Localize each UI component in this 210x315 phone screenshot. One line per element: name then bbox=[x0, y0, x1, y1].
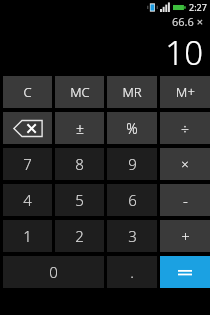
button[interactable]: 1 bbox=[3, 220, 52, 252]
button[interactable]: 3 bbox=[107, 220, 157, 252]
button[interactable]: 7 bbox=[3, 148, 52, 180]
button[interactable]: - bbox=[160, 184, 210, 216]
staticText: 9 bbox=[128, 154, 137, 174]
button[interactable]: 6 bbox=[107, 184, 157, 216]
button[interactable]: ÷ bbox=[160, 112, 210, 144]
button[interactable]: MR bbox=[107, 76, 157, 108]
staticText: C bbox=[23, 83, 32, 101]
staticText: 3 bbox=[128, 226, 137, 246]
button[interactable]: 4 bbox=[3, 184, 52, 216]
staticText: + bbox=[181, 226, 190, 246]
staticText: 2 bbox=[75, 226, 84, 246]
staticText: . bbox=[130, 262, 134, 282]
staticText: 6 bbox=[128, 190, 137, 210]
staticText: MR bbox=[122, 83, 142, 101]
staticText: ± bbox=[76, 119, 84, 138]
staticText: M+ bbox=[176, 83, 195, 101]
staticText: 4 bbox=[23, 190, 32, 210]
staticText: 1 bbox=[23, 226, 32, 246]
button[interactable]: M+ bbox=[160, 76, 210, 108]
staticText: × bbox=[181, 155, 189, 173]
button[interactable]: 0 bbox=[3, 256, 104, 288]
button[interactable]: % bbox=[107, 112, 157, 144]
staticText: 8 bbox=[75, 154, 84, 174]
button[interactable]: 5 bbox=[55, 184, 104, 216]
staticText: 2:27 bbox=[189, 1, 207, 13]
staticText: 5 bbox=[75, 190, 84, 210]
button[interactable]: + bbox=[160, 220, 210, 252]
button[interactable]: × bbox=[160, 148, 210, 180]
button[interactable]: 2 bbox=[55, 220, 104, 252]
button[interactable]: Backspace bbox=[3, 112, 52, 144]
staticText: 0 bbox=[49, 262, 58, 282]
staticText: - bbox=[183, 190, 188, 210]
button[interactable]: Equals bbox=[160, 256, 210, 288]
staticText: 7 bbox=[23, 154, 32, 174]
staticText: ÷ bbox=[181, 119, 189, 138]
button[interactable]: ± bbox=[55, 112, 104, 144]
button[interactable]: 9 bbox=[107, 148, 157, 180]
staticText: 66.6 × bbox=[172, 14, 203, 29]
button[interactable]: . bbox=[107, 256, 157, 288]
button[interactable]: C bbox=[3, 76, 52, 108]
button[interactable]: 8 bbox=[55, 148, 104, 180]
staticText: MC bbox=[70, 83, 90, 101]
staticText: % bbox=[126, 119, 138, 138]
staticText: 10 bbox=[165, 30, 203, 75]
button[interactable]: MC bbox=[55, 76, 104, 108]
